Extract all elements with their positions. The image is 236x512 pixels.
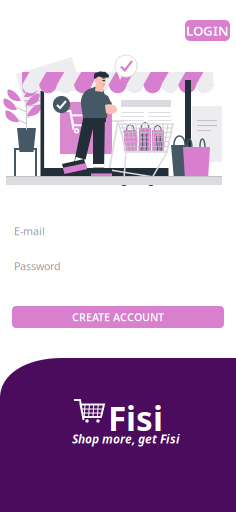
staticText: Shop more, get Fisi: [72, 431, 180, 447]
staticText: LOGIN: [186, 22, 229, 39]
button[interactable]: CREATE ACCOUNT: [12, 306, 224, 328]
button[interactable]: LOGIN: [185, 20, 230, 41]
staticText: E-mail: [14, 224, 45, 238]
staticText: CREATE ACCOUNT: [72, 310, 164, 324]
staticText: Fisi: [108, 396, 163, 440]
staticText: Password: [14, 259, 61, 273]
